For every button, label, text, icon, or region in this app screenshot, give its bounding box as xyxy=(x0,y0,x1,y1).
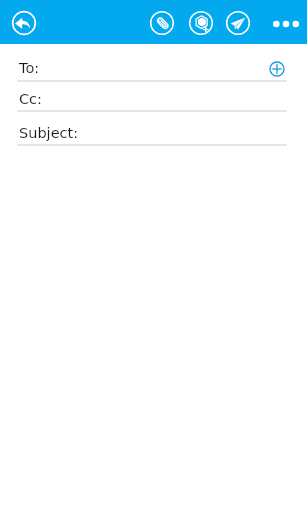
button[interactable]: Attach file xyxy=(146,7,178,39)
button[interactable]: Back xyxy=(8,7,40,39)
button[interactable]: Insert object xyxy=(185,7,217,39)
staticText: Cc: xyxy=(19,91,42,108)
staticText: To: xyxy=(19,60,40,77)
staticText: Subject: xyxy=(19,125,79,142)
button[interactable]: Add recipient xyxy=(265,57,289,81)
button[interactable]: More options xyxy=(270,8,302,40)
button[interactable]: Send xyxy=(222,7,254,39)
